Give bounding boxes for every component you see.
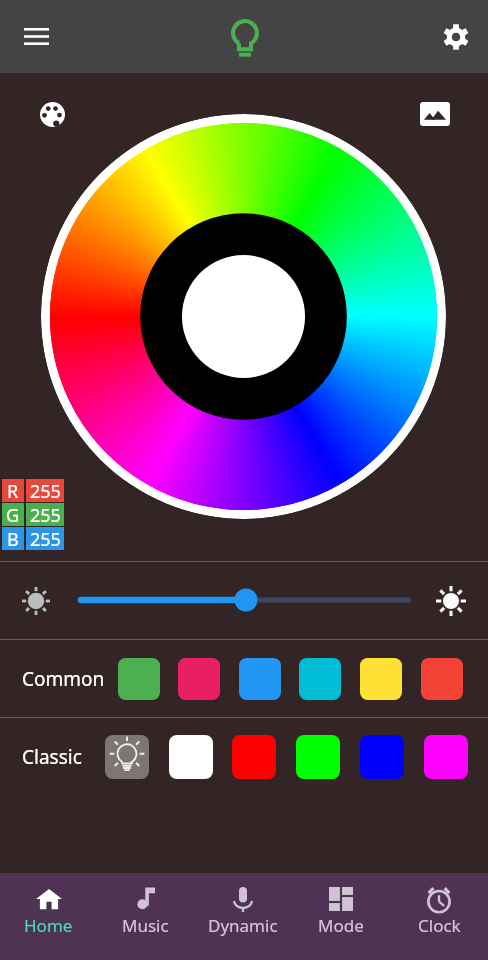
- staticText: Classic: [22, 744, 82, 770]
- button[interactable]: Settings: [431, 12, 480, 61]
- staticText: Common: [22, 666, 105, 692]
- staticText: R: [7, 479, 19, 502]
- button[interactable]: Image: [416, 95, 454, 133]
- button[interactable]: Light: [220, 13, 269, 62]
- staticText: Mode: [318, 914, 364, 937]
- button[interactable]: Brightness: [71, 580, 419, 620]
- button[interactable]: Classic colour 3: [232, 735, 276, 779]
- staticText: Clock: [418, 914, 461, 937]
- button[interactable]: Colour wheel: [41, 114, 446, 519]
- staticText: G: [6, 503, 20, 526]
- button[interactable]: Common colour 3: [239, 658, 281, 700]
- button[interactable]: Dynamic: [194, 873, 292, 960]
- button[interactable]: Common colour 6: [421, 658, 463, 700]
- staticText: 255: [30, 527, 61, 550]
- staticText: Home: [24, 914, 73, 937]
- staticText: 255: [30, 479, 61, 502]
- staticText: Dynamic: [208, 914, 278, 937]
- button[interactable]: Classic colour 6: [424, 735, 468, 779]
- button[interactable]: Palette: [33, 95, 71, 133]
- button[interactable]: Classic colour 5: [360, 735, 404, 779]
- button[interactable]: Menu: [12, 12, 61, 61]
- button[interactable]: Clock: [390, 873, 488, 960]
- staticText: B: [7, 527, 19, 550]
- button[interactable]: Home: [0, 873, 97, 960]
- staticText: 255: [30, 503, 61, 526]
- staticText: Music: [122, 914, 169, 937]
- button[interactable]: Classic colour 1: [105, 735, 149, 779]
- button[interactable]: Classic colour 4: [296, 735, 340, 779]
- button[interactable]: Common colour 4: [299, 658, 341, 700]
- button[interactable]: Common colour 2: [178, 658, 220, 700]
- button[interactable]: Common colour 5: [360, 658, 402, 700]
- button[interactable]: Classic colour 2: [169, 735, 213, 779]
- button[interactable]: Music: [97, 873, 194, 960]
- button[interactable]: Common colour 1: [118, 658, 160, 700]
- button[interactable]: Mode: [292, 873, 390, 960]
